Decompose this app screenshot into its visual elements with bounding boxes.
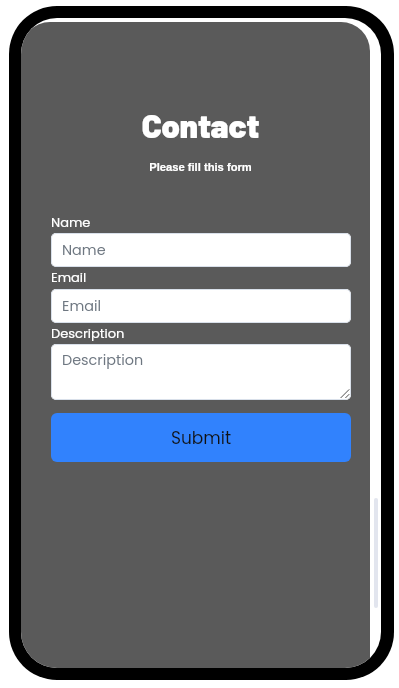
button[interactable]: Email bbox=[51, 289, 351, 323]
staticText: Submit bbox=[171, 426, 232, 450]
button[interactable]: Name bbox=[51, 233, 351, 267]
staticText: Description bbox=[62, 350, 144, 370]
staticText: Name bbox=[62, 240, 106, 260]
staticText: Description bbox=[51, 324, 125, 342]
staticText: Name bbox=[51, 213, 91, 231]
staticText: Email bbox=[51, 268, 87, 286]
button[interactable]: Submit bbox=[51, 413, 351, 462]
button[interactable]: Description bbox=[51, 344, 351, 400]
staticText: Please fill this form bbox=[21, 161, 380, 174]
staticText: Contact bbox=[21, 105, 380, 144]
staticText: Email bbox=[62, 296, 102, 316]
